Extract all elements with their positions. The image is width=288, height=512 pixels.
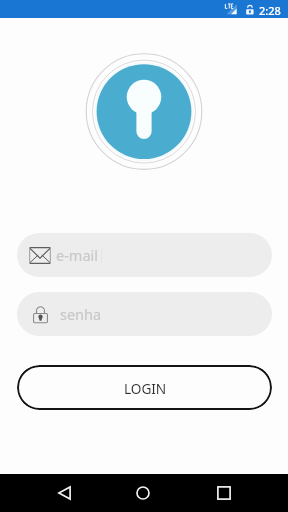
staticText: senha bbox=[60, 304, 102, 324]
button[interactable]: e-mail bbox=[17, 233, 272, 277]
staticText: 2:28 bbox=[259, 3, 281, 18]
button[interactable]: Home bbox=[119, 474, 167, 512]
button[interactable]: Recents bbox=[200, 474, 248, 512]
staticText: e-mail bbox=[56, 245, 99, 265]
button[interactable]: Back bbox=[40, 474, 88, 512]
staticText: LOGIN bbox=[124, 379, 167, 398]
button[interactable]: senha bbox=[17, 292, 272, 336]
button[interactable]: LOGIN bbox=[17, 365, 272, 410]
